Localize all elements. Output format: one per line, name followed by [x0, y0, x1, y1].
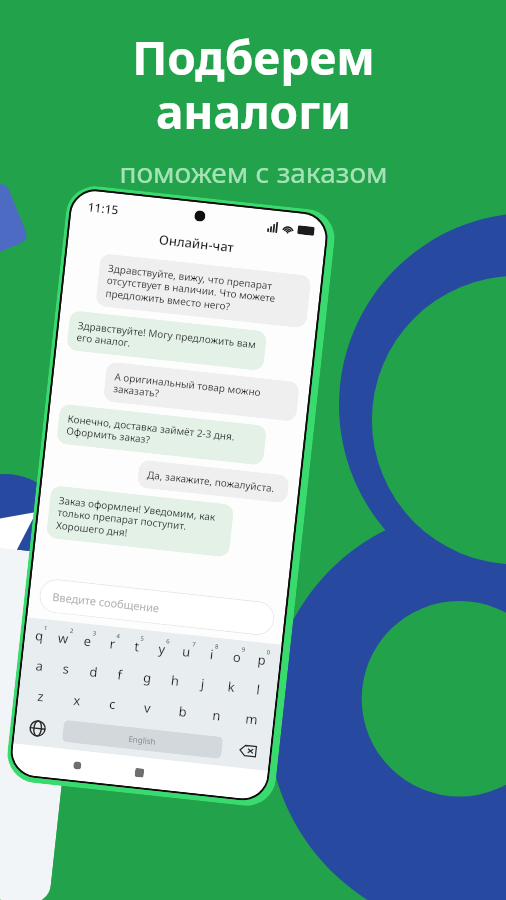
button[interactable]: n	[198, 702, 236, 728]
staticText: e	[83, 631, 93, 650]
button[interactable]: l	[243, 677, 274, 702]
staticText: m	[244, 709, 259, 729]
staticText: English	[128, 733, 157, 747]
staticText: 6	[166, 637, 171, 646]
button[interactable]: c	[93, 691, 131, 717]
button[interactable]: s	[52, 656, 81, 681]
button[interactable]: А оригинальный товар можно заказать?	[103, 361, 300, 422]
button[interactable]: k	[216, 674, 246, 699]
staticText: x	[72, 691, 81, 709]
staticText: t	[134, 637, 140, 655]
button[interactable]: f	[105, 662, 134, 687]
staticText: 2	[69, 627, 74, 635]
button[interactable]: a	[25, 653, 54, 678]
staticText: i	[209, 645, 215, 663]
staticText: a	[35, 656, 45, 675]
staticText: d	[89, 662, 98, 681]
staticText: h	[170, 671, 181, 690]
staticText: 4	[116, 632, 121, 640]
staticText: 1	[44, 624, 48, 632]
button[interactable]: u	[175, 639, 202, 664]
staticText: p	[257, 650, 267, 669]
staticText: Здравствуйте, вижу, что препарат отсутст…	[105, 261, 302, 321]
button[interactable]: b	[164, 699, 201, 724]
button[interactable]: Здравствуйте! Могу предложить вам его ан…	[66, 310, 267, 371]
button[interactable]: h	[160, 668, 190, 693]
staticText: Онлайн-чат	[78, 222, 315, 265]
button[interactable]: Заказ оформлен! Уведомим, как только пре…	[46, 485, 234, 558]
button[interactable]: g	[132, 665, 162, 690]
staticText: l	[256, 680, 261, 699]
staticText: z	[37, 687, 46, 705]
button[interactable]: Да, закажите, пожалуйста.	[137, 459, 290, 503]
staticText: 11:15	[87, 198, 119, 218]
staticText: j	[200, 674, 206, 693]
staticText: Да, закажите, пожалуйста.	[146, 467, 275, 495]
button[interactable]: p	[250, 648, 277, 672]
staticText: n	[212, 706, 222, 725]
button[interactable]: j	[188, 671, 218, 696]
button[interactable]: Введите сообщение	[38, 577, 276, 637]
staticText: o	[232, 648, 242, 666]
staticText: 5	[140, 635, 145, 643]
staticText: f	[116, 665, 123, 684]
staticText: Введите сообщение	[52, 589, 161, 615]
staticText: g	[142, 668, 152, 687]
button[interactable]: Конечно, доставка займёт 2-3 дня. Оформи…	[56, 403, 267, 466]
staticText: s	[62, 659, 71, 678]
button[interactable]: o	[225, 645, 252, 669]
staticText: y	[157, 640, 166, 658]
staticText: u	[181, 642, 192, 661]
staticText: r	[109, 634, 117, 653]
button[interactable]: r	[101, 631, 128, 656]
staticText: v	[143, 698, 152, 717]
staticText: c	[108, 695, 117, 713]
button[interactable]: d	[78, 659, 108, 684]
button[interactable]: q	[28, 624, 54, 648]
button[interactable]: English	[62, 720, 223, 759]
staticText: поможем с заказом	[119, 153, 388, 191]
button[interactable]: Change language	[18, 714, 56, 742]
staticText: 0	[266, 648, 271, 657]
staticText: w	[57, 629, 70, 648]
staticText: Конечно, доставка займёт 2-3 дня. Оформи…	[66, 411, 257, 458]
staticText: 7	[192, 640, 196, 649]
staticText: b	[178, 702, 188, 721]
button[interactable]: e	[76, 629, 103, 653]
button[interactable]: m	[233, 706, 270, 732]
button[interactable]: v	[129, 695, 166, 721]
staticText: Подберем аналоги	[132, 26, 375, 143]
button[interactable]: y	[150, 637, 177, 661]
button[interactable]: Здравствуйте, вижу, что препарат отсутст…	[95, 253, 312, 329]
staticText: Заказ оформлен! Уведомим, как только пре…	[55, 493, 225, 550]
button[interactable]: z	[21, 683, 60, 709]
staticText: 8	[215, 643, 219, 651]
button[interactable]: w	[52, 626, 78, 651]
button[interactable]: Backspace	[229, 737, 267, 765]
staticText: k	[227, 677, 236, 696]
button[interactable]: i	[200, 642, 227, 667]
staticText: q	[34, 626, 44, 645]
staticText: А оригинальный товар можно заказать?	[113, 369, 290, 414]
button[interactable]: x	[57, 687, 95, 713]
staticText: 9	[241, 646, 246, 654]
button[interactable]: t	[125, 634, 153, 659]
staticText: 3	[92, 629, 97, 638]
staticText: Здравствуйте! Могу предложить вам его ан…	[76, 318, 258, 363]
